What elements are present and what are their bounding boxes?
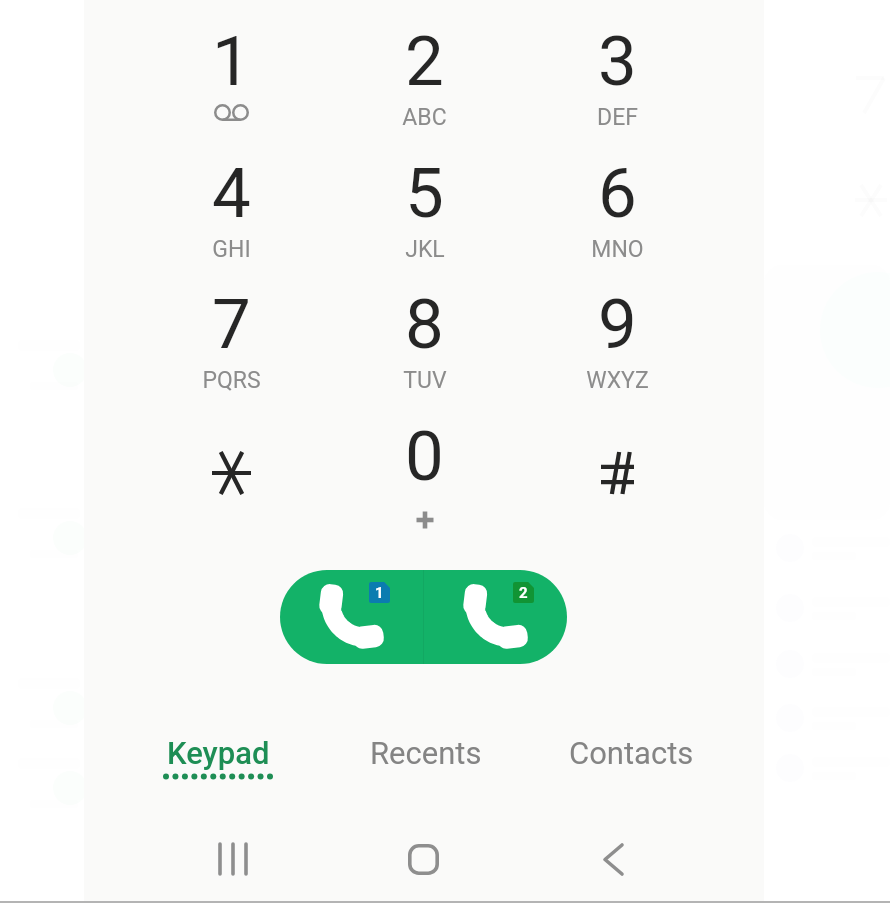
button[interactable]: 5 xyxy=(328,126,521,257)
button[interactable]: Keypad xyxy=(114,735,321,815)
staticText: 0 xyxy=(405,416,444,497)
button[interactable]: 2 xyxy=(328,0,521,125)
staticText: PQRS xyxy=(202,367,261,394)
staticText: Recents xyxy=(370,735,482,771)
button[interactable]: 4 xyxy=(135,126,328,257)
button[interactable]: Pound xyxy=(521,389,714,520)
staticText: 2 xyxy=(519,584,528,602)
button[interactable]: Recents xyxy=(322,735,529,815)
button[interactable]: 6 xyxy=(521,126,714,257)
button[interactable]: 0 xyxy=(328,389,521,520)
staticText: DEF xyxy=(597,104,638,131)
button[interactable]: Contacts xyxy=(528,735,735,815)
staticText: 1 xyxy=(212,21,251,102)
button[interactable]: Recent apps xyxy=(190,819,276,899)
staticText: TUV xyxy=(403,367,447,394)
staticText: 1 xyxy=(375,584,384,602)
staticText: 9 xyxy=(598,284,637,365)
button[interactable]: Home xyxy=(380,819,466,899)
staticText: 6 xyxy=(598,153,637,234)
staticText: 4 xyxy=(212,153,251,234)
staticText: WXYZ xyxy=(586,367,649,394)
staticText: ABC xyxy=(402,104,447,131)
button[interactable]: Star xyxy=(135,389,328,520)
button[interactable]: 1 xyxy=(135,0,328,125)
button[interactable]: 3 xyxy=(521,0,714,125)
button[interactable]: Back xyxy=(570,819,656,899)
button[interactable]: 7 xyxy=(135,257,328,388)
button[interactable]: 8 xyxy=(328,257,521,388)
button[interactable]: 9 xyxy=(521,257,714,388)
button[interactable]: Call using SIM 2 xyxy=(424,570,567,664)
staticText: Contacts xyxy=(569,735,694,771)
staticText: GHI xyxy=(212,236,251,263)
staticText: 2 xyxy=(405,21,444,102)
button[interactable]: Call using SIM 1 xyxy=(280,570,423,664)
staticText: Keypad xyxy=(167,735,270,771)
staticText: 5 xyxy=(405,153,444,234)
staticText: 7 xyxy=(212,284,251,365)
staticText: 8 xyxy=(405,284,444,365)
staticText: JKL xyxy=(405,236,445,263)
staticText: MNO xyxy=(591,236,644,263)
staticText: 3 xyxy=(598,21,637,102)
